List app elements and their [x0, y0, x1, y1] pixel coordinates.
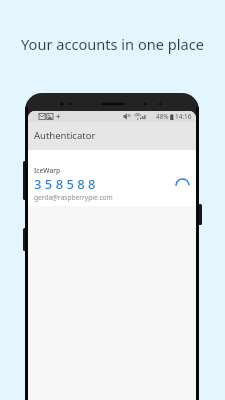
button[interactable]: IceWarp: [28, 150, 196, 206]
staticText: 48%: [156, 112, 169, 121]
staticText: gerda@raspberrypie.com: [34, 193, 113, 202]
staticText: Your accounts in one place: [0, 34, 225, 54]
staticText: 3 5 8 5 8 8: [34, 175, 96, 193]
staticText: Authenticator: [34, 129, 96, 142]
button[interactable]: Authenticator: [28, 122, 196, 150]
staticText: IceWarp: [34, 166, 61, 175]
staticText: 14:16: [175, 112, 192, 121]
